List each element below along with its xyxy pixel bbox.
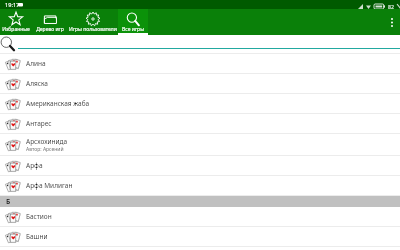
staticText: Арфа Милиган [26, 181, 73, 190]
staticText: Арсхохинида [26, 137, 68, 146]
button[interactable]: Арфа [0, 156, 400, 175]
button[interactable]: Дерево игр [32, 9, 68, 35]
staticText: Башни [26, 232, 48, 241]
staticText: Американская жаба [26, 99, 90, 108]
button[interactable]: Все игры [118, 9, 148, 35]
staticText: Алина [26, 59, 46, 68]
staticText: Антарес [26, 119, 52, 128]
button[interactable]: Башни [0, 227, 400, 246]
button[interactable]: Алина [0, 54, 400, 73]
staticText: 19:17 [5, 1, 20, 9]
staticText: Избранные [2, 26, 30, 33]
button[interactable]: Арсхохинида [0, 134, 400, 155]
button[interactable]: Бастион [0, 207, 400, 226]
button[interactable]: Арфа Милиган [0, 176, 400, 195]
staticText: Дерево игр [36, 26, 64, 33]
staticText: 82 [388, 3, 394, 10]
button[interactable]: Американская жаба [0, 94, 400, 113]
button[interactable]: Избранные [0, 9, 32, 35]
staticText: Б [6, 197, 11, 206]
staticText: Игры пользователи [69, 26, 117, 33]
staticText: Автор: Арсений [26, 146, 64, 153]
button[interactable]: Антарес [0, 114, 400, 133]
button[interactable]: Аляска [0, 74, 400, 93]
staticText: Бастион [26, 212, 52, 221]
staticText: Аляска [26, 79, 48, 88]
button[interactable]: More options [384, 9, 400, 35]
staticText: Арфа [26, 161, 43, 170]
button[interactable]: Игры пользователи [68, 9, 118, 35]
staticText: Все игры [122, 26, 144, 33]
